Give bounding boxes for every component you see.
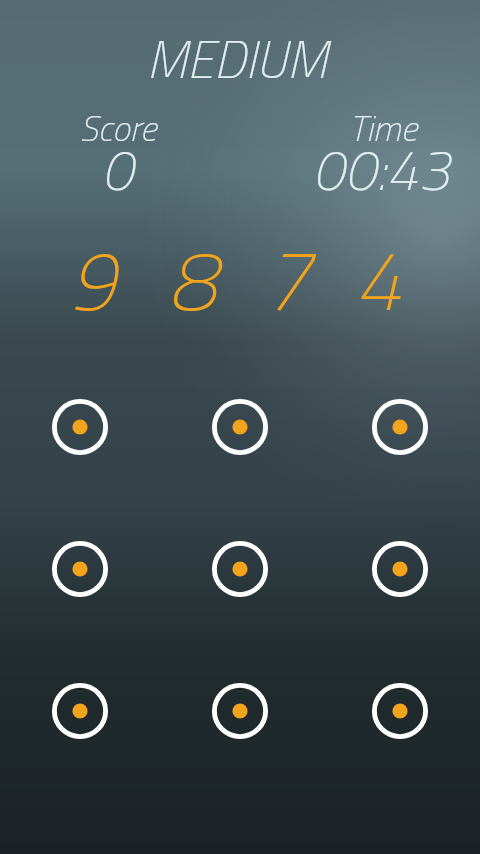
staticText: MEDIUM	[67, 19, 407, 98]
staticText: Time	[213, 100, 480, 155]
button[interactable]: Target dot 6	[367, 536, 433, 602]
button[interactable]: Target dot 5	[207, 536, 273, 602]
button[interactable]: Target dot 4	[47, 536, 113, 602]
staticText: 0	[0, 125, 287, 212]
staticText: 7	[117, 215, 457, 343]
button[interactable]: Target dot 2	[207, 394, 273, 460]
button[interactable]: Target dot 8	[207, 678, 273, 744]
staticText: 8	[22, 215, 362, 343]
staticText: 00:43	[211, 125, 480, 212]
button[interactable]: Target dot 3	[367, 394, 433, 460]
button[interactable]: Target dot 1	[47, 394, 113, 460]
staticText: 9	[0, 215, 262, 343]
button[interactable]: Target dot 9	[367, 678, 433, 744]
staticText: 4	[208, 215, 480, 343]
button[interactable]: Target dot 7	[47, 678, 113, 744]
staticText: Score	[0, 100, 288, 155]
